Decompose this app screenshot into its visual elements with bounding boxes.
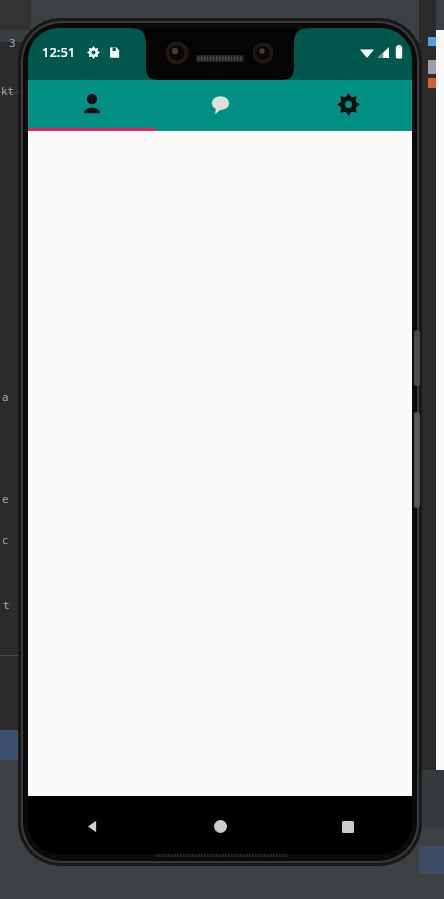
staticText: kt	[1, 83, 15, 98]
button[interactable]: Settings	[284, 80, 412, 128]
button[interactable]: Back	[28, 799, 156, 854]
staticText: t	[3, 597, 10, 612]
staticText: 3	[9, 35, 16, 50]
staticText: 12:51	[42, 43, 76, 61]
button[interactable]: Home	[156, 799, 284, 854]
button[interactable]: Chat	[156, 80, 284, 128]
staticText: c	[2, 532, 9, 547]
staticText: a	[2, 389, 9, 404]
staticText: e	[2, 491, 9, 506]
button[interactable]: Profile	[28, 80, 156, 128]
button[interactable]: Recents	[284, 799, 412, 854]
